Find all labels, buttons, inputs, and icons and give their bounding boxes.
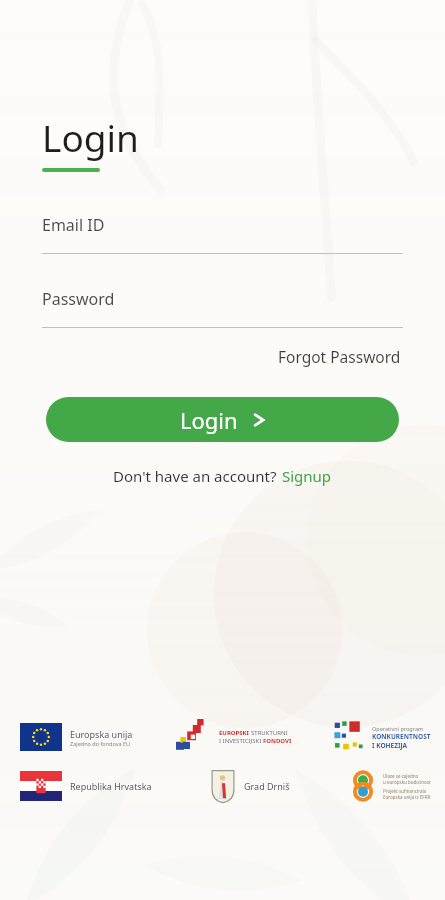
staticText: Email ID	[42, 214, 105, 236]
staticText: Projekt sufinancirala	[383, 788, 427, 794]
staticText: u europsku budućnost	[383, 779, 431, 785]
staticText: Login	[42, 112, 139, 162]
staticText: Europska unija	[70, 728, 133, 740]
button[interactable]: Password	[42, 288, 403, 328]
staticText: I INVESTICIJSKI	[219, 737, 263, 745]
staticText: Login	[180, 405, 238, 435]
staticText: KONKURENTNOST	[372, 732, 431, 741]
staticText: Password	[42, 288, 115, 310]
staticText: I KOHEZIJA	[372, 741, 408, 750]
button[interactable]: Forgot Password	[276, 342, 403, 371]
staticText: Operativni program	[372, 725, 424, 732]
button[interactable]: Email ID	[42, 214, 403, 254]
staticText: Europska unija iz EFRR	[383, 794, 431, 800]
staticText: STRUKTURNI	[251, 729, 288, 737]
staticText: Ulaze se zajedno	[383, 773, 419, 779]
staticText: FONDOVI	[263, 737, 292, 745]
button[interactable]: Signup	[281, 464, 333, 488]
staticText: Zajedno do fondova EU	[70, 740, 131, 747]
button[interactable]: Login	[46, 397, 399, 442]
staticText: EUROPSKI	[219, 729, 251, 737]
staticText: Signup	[282, 466, 332, 486]
staticText: Grad Drniš	[244, 780, 290, 792]
staticText: Forgot Password	[278, 346, 401, 367]
staticText: Republika Hrvatska	[70, 780, 152, 792]
staticText: Don't have an account?	[113, 466, 281, 486]
